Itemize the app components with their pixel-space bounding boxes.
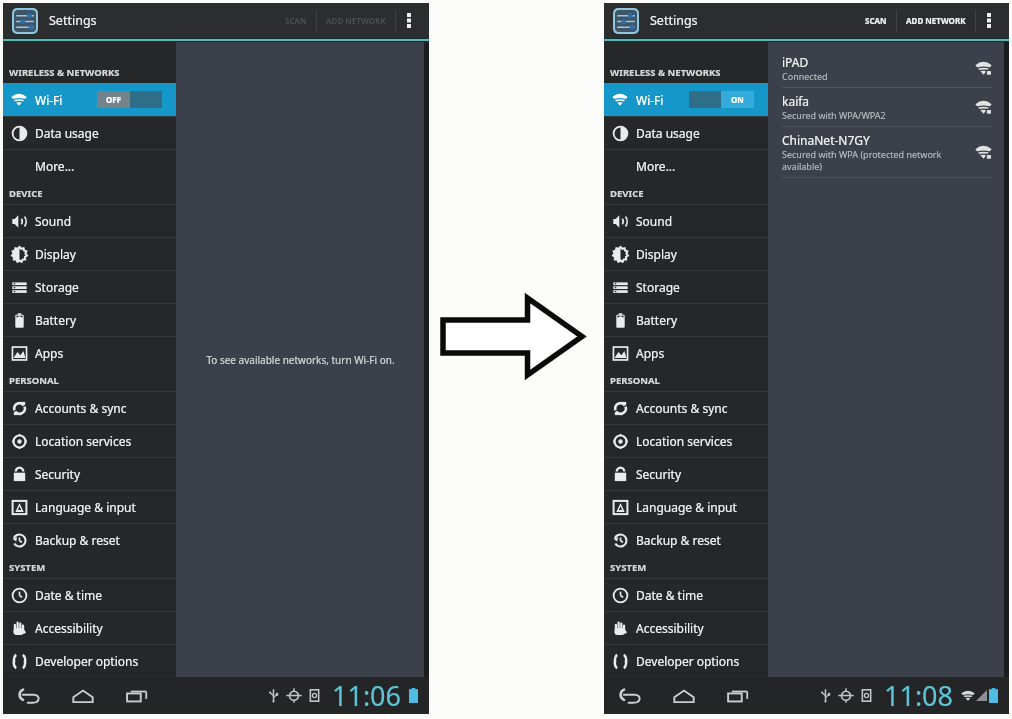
staticText: Wi-Fi (636, 92, 664, 108)
staticText: Apps (35, 345, 64, 361)
button[interactable]: Data usage (3, 117, 176, 149)
button[interactable]: Apps (604, 337, 768, 369)
staticText: Secured with WPA/WPA2 (782, 109, 886, 121)
button[interactable]: SCAN (856, 3, 896, 38)
button[interactable]: Language & input (604, 491, 768, 523)
button[interactable]: Sound (604, 205, 768, 237)
staticText: DEVICE (610, 187, 644, 200)
staticText: SCAN (285, 15, 307, 26)
staticText: More... (636, 158, 676, 174)
staticText: SYSTEM (9, 561, 46, 574)
button[interactable]: Language & input (3, 491, 176, 523)
button[interactable]: Security (604, 458, 768, 490)
button[interactable]: ChinaNet-N7GY (782, 127, 992, 177)
staticText: To see available networks, turn Wi-Fi on… (206, 353, 395, 367)
staticText: ON (731, 94, 744, 105)
staticText: Settings (49, 12, 97, 29)
staticText: 11:08 (884, 677, 954, 714)
staticText: OFF (106, 94, 122, 105)
button[interactable]: Backup & reset (604, 524, 768, 556)
button[interactable]: More... (604, 150, 768, 182)
staticText: 11:06 (332, 677, 402, 714)
button[interactable]: SCAN (276, 3, 316, 38)
button[interactable]: Back (12, 679, 46, 712)
staticText: Developer options (636, 653, 740, 669)
staticText: Security (35, 466, 81, 482)
button[interactable]: Back (613, 679, 647, 712)
button[interactable]: kaifa (782, 88, 992, 126)
button[interactable]: Accounts & sync (3, 392, 176, 424)
staticText: WIRELESS & NETWORKS (9, 66, 120, 79)
staticText: Accessibility (636, 620, 704, 636)
staticText: Sound (636, 213, 673, 229)
button[interactable]: iPAD (782, 49, 992, 87)
button[interactable]: More options (396, 3, 422, 38)
staticText: Date & time (35, 587, 103, 603)
button[interactable]: Home (667, 679, 701, 712)
button[interactable]: Developer options (3, 645, 176, 677)
staticText: iPAD (782, 54, 809, 70)
button[interactable]: Storage (604, 271, 768, 303)
staticText: More... (35, 158, 75, 174)
staticText: Backup & reset (636, 532, 721, 548)
button[interactable]: Display (604, 238, 768, 270)
button[interactable]: Date & time (604, 579, 768, 611)
staticText: Accounts & sync (636, 400, 728, 416)
staticText: Connected (782, 70, 828, 82)
button[interactable]: Recent apps (120, 679, 154, 712)
staticText: Location services (35, 433, 132, 449)
button[interactable]: More options (976, 3, 1002, 38)
staticText: Location services (636, 433, 733, 449)
button[interactable]: Battery (604, 304, 768, 336)
button[interactable]: Accessibility (3, 612, 176, 644)
staticText: ADD NETWORK (326, 15, 386, 26)
button[interactable]: Battery (3, 304, 176, 336)
staticText: Accessibility (35, 620, 103, 636)
staticText: DEVICE (9, 187, 43, 200)
staticText: PERSONAL (610, 374, 660, 387)
button[interactable]: Wi-Fi (604, 83, 768, 116)
staticText: Apps (636, 345, 665, 361)
button[interactable]: ADD NETWORK (317, 3, 395, 38)
staticText: Language & input (35, 499, 136, 515)
button[interactable]: Accounts & sync (604, 392, 768, 424)
staticText: Accounts & sync (35, 400, 127, 416)
staticText: Storage (636, 279, 680, 295)
button[interactable]: Data usage (604, 117, 768, 149)
button[interactable]: Location services (604, 425, 768, 457)
button[interactable]: Location services (3, 425, 176, 457)
button[interactable]: Display (3, 238, 176, 270)
button[interactable]: Accessibility (604, 612, 768, 644)
staticText: SCAN (865, 15, 887, 26)
button[interactable]: Wi-Fi (3, 83, 176, 116)
button[interactable]: Security (3, 458, 176, 490)
button[interactable]: Sound (3, 205, 176, 237)
staticText: WIRELESS & NETWORKS (610, 66, 721, 79)
staticText: Settings (650, 12, 698, 29)
staticText: Wi-Fi (35, 92, 63, 108)
button[interactable]: Developer options (604, 645, 768, 677)
staticText: Date & time (636, 587, 704, 603)
button[interactable]: Recent apps (721, 679, 755, 712)
staticText: Backup & reset (35, 532, 120, 548)
staticText: Language & input (636, 499, 737, 515)
staticText: Developer options (35, 653, 139, 669)
staticText: Battery (35, 312, 77, 328)
staticText: PERSONAL (9, 374, 59, 387)
button[interactable]: OFF (97, 91, 162, 108)
staticText: Data usage (636, 125, 700, 141)
button[interactable]: ADD NETWORK (897, 3, 975, 38)
button[interactable]: Date & time (3, 579, 176, 611)
staticText: SYSTEM (610, 561, 647, 574)
staticText: Secured with WPA (protected network avai… (782, 148, 965, 172)
staticText: Battery (636, 312, 678, 328)
button[interactable]: ON (689, 91, 754, 108)
button[interactable]: Apps (3, 337, 176, 369)
staticText: Sound (35, 213, 72, 229)
button[interactable]: Storage (3, 271, 176, 303)
staticText: Display (35, 246, 76, 262)
button[interactable]: More... (3, 150, 176, 182)
button[interactable]: Backup & reset (3, 524, 176, 556)
staticText: Storage (35, 279, 79, 295)
button[interactable]: Home (66, 679, 100, 712)
